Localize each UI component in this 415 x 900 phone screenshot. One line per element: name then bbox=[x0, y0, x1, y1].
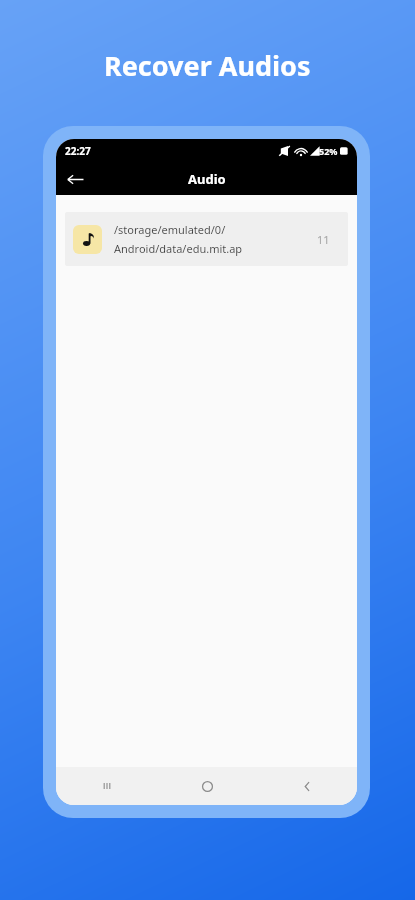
staticText: 11 bbox=[317, 232, 330, 247]
staticText: Recover Audios bbox=[104, 47, 311, 84]
button[interactable]: Back bbox=[60, 164, 90, 194]
button[interactable]: Back bbox=[257, 767, 357, 805]
staticText: Audio bbox=[188, 170, 226, 188]
button[interactable]: Home bbox=[157, 767, 257, 805]
staticText: 22:27 bbox=[65, 144, 91, 158]
button[interactable]: /storage/emulated/0/ bbox=[65, 212, 348, 266]
staticText: Android/data/edu.mit.ap bbox=[114, 241, 243, 256]
button[interactable]: Recent apps bbox=[56, 767, 157, 805]
staticText: 52% bbox=[319, 145, 338, 157]
staticText: /storage/emulated/0/ bbox=[114, 222, 226, 237]
